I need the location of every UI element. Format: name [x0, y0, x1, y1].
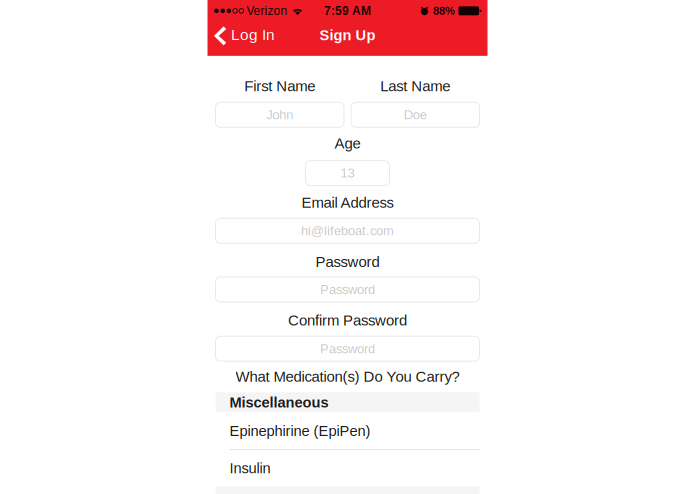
staticText: Email Address	[301, 194, 393, 211]
staticText: John	[266, 108, 293, 122]
staticText: What Medication(s) Do You Carry?	[235, 368, 459, 385]
staticText: Log In	[231, 26, 275, 43]
staticText: First Name	[244, 78, 315, 94]
button[interactable]: Log In	[207, 22, 283, 56]
staticText: Sign Up	[319, 27, 375, 43]
staticText: Password	[320, 341, 375, 356]
staticText: Insulin	[229, 460, 270, 476]
staticText: Age	[334, 135, 360, 152]
staticText: Verizon	[247, 4, 288, 17]
staticText: 13	[340, 166, 354, 180]
button[interactable]: Epinephirine (EpiPen)	[215, 412, 479, 449]
staticText: hi@lifeboat.com	[301, 224, 394, 238]
staticText: 88%	[433, 5, 455, 17]
staticText: Doe	[404, 108, 427, 122]
button[interactable]: Insulin	[215, 450, 479, 486]
staticText: Password	[320, 282, 375, 297]
staticText: Password	[315, 253, 379, 270]
staticText: Epinephirine (EpiPen)	[229, 423, 370, 439]
staticText: Miscellaneous	[229, 394, 328, 411]
staticText: 7:59 AM	[324, 4, 371, 17]
staticText: Last Name	[380, 78, 450, 94]
staticText: Confirm Password	[288, 312, 407, 329]
